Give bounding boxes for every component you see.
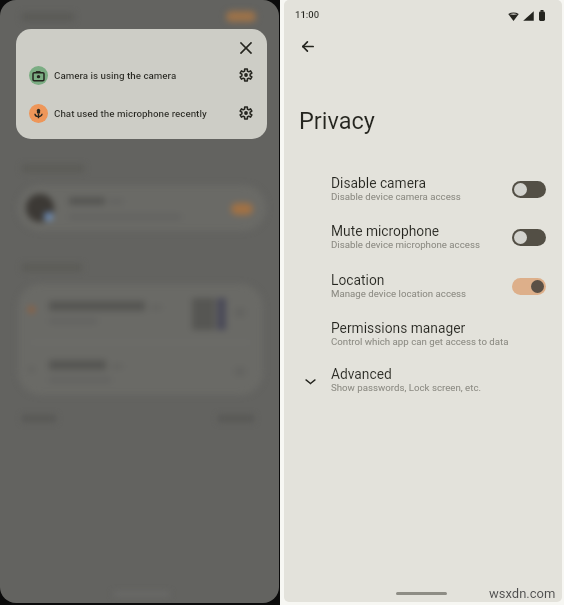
button[interactable]: App settings — [235, 102, 257, 124]
button[interactable]: Mute microphone — [284, 218, 562, 262]
staticText: Disable device microphone access — [331, 239, 480, 250]
button[interactable]: Location — [284, 267, 562, 311]
button[interactable]: App settings — [235, 64, 257, 86]
button[interactable]: Advanced — [284, 361, 562, 405]
button[interactable]: Back — [295, 33, 321, 59]
button[interactable]: Disable camera — [284, 170, 562, 214]
staticText: Disable camera — [331, 175, 426, 191]
staticText: Camera is using the camera — [54, 70, 177, 81]
staticText: Permissions manager — [331, 320, 466, 336]
staticText: wsxdn.com — [489, 586, 556, 601]
button[interactable]: Mute microphone — [512, 229, 546, 246]
staticText: 11:00 — [295, 9, 320, 20]
staticText: Mute microphone — [331, 223, 440, 239]
button[interactable]: Close — [233, 35, 258, 60]
button[interactable]: Camera is using the camera — [22, 58, 262, 92]
staticText: Manage device location access — [331, 288, 467, 299]
staticText: Chat used the microphone recently — [54, 108, 207, 119]
staticText: Privacy — [299, 107, 375, 135]
button[interactable]: Location — [512, 278, 546, 295]
button[interactable]: Chat used the microphone recently — [22, 96, 262, 130]
staticText: Show passwords, Lock screen, etc. — [331, 382, 482, 393]
staticText: Advanced — [331, 366, 392, 382]
button[interactable]: Permissions manager — [284, 315, 562, 359]
staticText: Control which app can get access to data — [331, 336, 509, 347]
button[interactable]: Disable camera — [512, 181, 546, 198]
staticText: Disable device camera access — [331, 191, 461, 202]
staticText: Location — [331, 272, 385, 288]
